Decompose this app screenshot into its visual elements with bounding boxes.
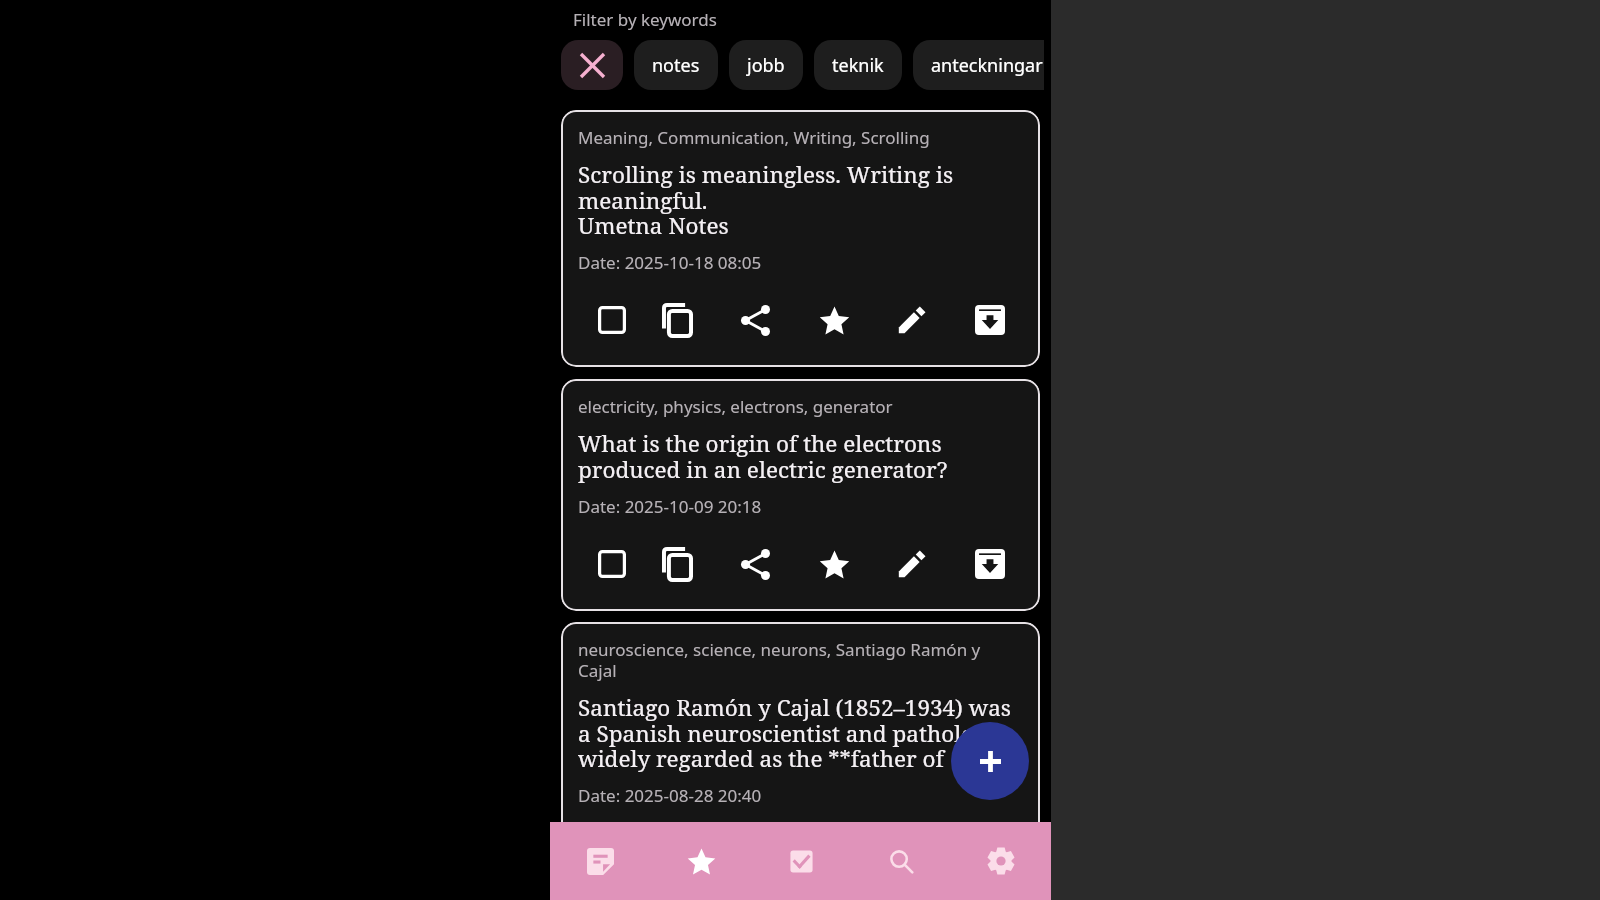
staticText: Date: 2025-10-18 08:05	[578, 251, 762, 274]
button[interactable]: electricity, physics, electrons, generat…	[561, 379, 1040, 611]
staticText: Scrolling is meaningless. Writing is mea…	[578, 159, 1022, 241]
staticText: jobb	[747, 53, 785, 78]
button[interactable]: Edit	[890, 542, 934, 586]
button[interactable]: Search	[851, 822, 951, 900]
button[interactable]: Archive	[968, 542, 1012, 586]
button[interactable]: Tasks	[751, 822, 851, 900]
staticText: notes	[652, 53, 700, 78]
button[interactable]: Copy	[655, 298, 699, 342]
button[interactable]: Copy	[655, 542, 699, 586]
staticText: Date: 2025-10-09 20:18	[578, 495, 762, 518]
button[interactable]: Favorites	[651, 822, 751, 900]
button[interactable]: teknik	[814, 40, 902, 90]
button[interactable]: neuroscience, science, neurons, Santiago…	[561, 622, 1040, 882]
staticText: electricity, physics, electrons, generat…	[578, 395, 893, 418]
button[interactable]: Select	[590, 298, 634, 342]
button[interactable]: Select	[590, 542, 634, 586]
staticText: Filter by keywords	[573, 8, 717, 31]
button[interactable]: Archive	[968, 298, 1012, 342]
button[interactable]: Favorite	[812, 542, 856, 586]
button[interactable]: Settings	[951, 822, 1051, 900]
button[interactable]: Meaning, Communication, Writing, Scrolli…	[561, 110, 1040, 367]
button[interactable]: anteckningar	[913, 40, 1044, 90]
staticText: Santiago Ramón y Cajal (1852–1934) was a…	[578, 692, 1022, 774]
staticText: Meaning, Communication, Writing, Scrolli…	[578, 126, 930, 149]
button[interactable]: Favorite	[812, 298, 856, 342]
staticText: Date: 2025-08-28 20:40	[578, 784, 762, 807]
button[interactable]: Add note	[951, 722, 1029, 800]
button[interactable]: notes	[634, 40, 718, 90]
button[interactable]: Share	[733, 298, 777, 342]
button[interactable]: Share	[733, 542, 777, 586]
staticText: teknik	[832, 53, 884, 78]
button[interactable]: Edit	[890, 298, 934, 342]
staticText: What is the origin of the electrons prod…	[578, 428, 1022, 485]
button[interactable]: jobb	[729, 40, 803, 90]
staticText: neuroscience, science, neurons, Santiago…	[578, 638, 1022, 682]
button[interactable]: Clear filters	[561, 40, 623, 90]
staticText: anteckningar	[931, 53, 1043, 78]
button[interactable]: Notes	[550, 822, 651, 900]
